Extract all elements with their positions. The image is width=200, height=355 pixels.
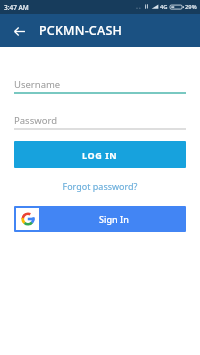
staticText: 3:47 AM	[4, 3, 29, 12]
button[interactable]: Sign In	[14, 206, 186, 232]
staticText: 29%	[185, 3, 197, 11]
button[interactable]: Username	[14, 77, 186, 94]
staticText: Username	[14, 78, 61, 91]
staticText: Forgot password?	[62, 180, 138, 192]
staticText: PCKMN-CASH	[39, 22, 123, 39]
button[interactable]: Forgot password?	[56, 178, 144, 194]
staticText: LOG IN	[82, 149, 118, 161]
staticText: 4G	[160, 3, 168, 11]
staticText: Sign In	[99, 213, 129, 225]
staticText: Password	[14, 114, 57, 127]
button[interactable]: Back	[6, 18, 32, 44]
button[interactable]: Password	[14, 113, 186, 130]
button[interactable]: LOG IN	[14, 141, 186, 168]
